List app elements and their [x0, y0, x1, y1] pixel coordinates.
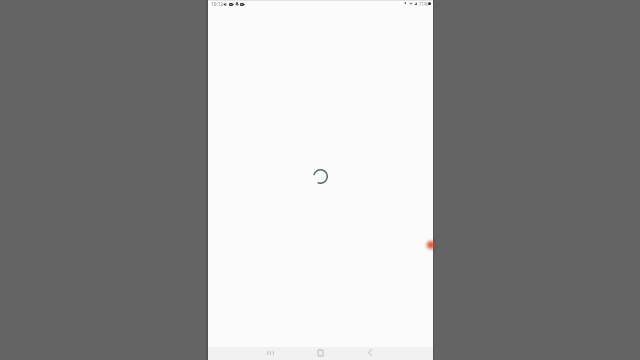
button[interactable]: Recents	[260, 346, 280, 359]
other: Loading	[313, 169, 328, 184]
staticText: 71%	[419, 1, 428, 7]
button[interactable]: Open chat bubble	[419, 233, 433, 257]
button[interactable]: Back	[360, 346, 380, 359]
staticText: 10:12	[211, 1, 224, 8]
button[interactable]: Home	[310, 346, 330, 359]
